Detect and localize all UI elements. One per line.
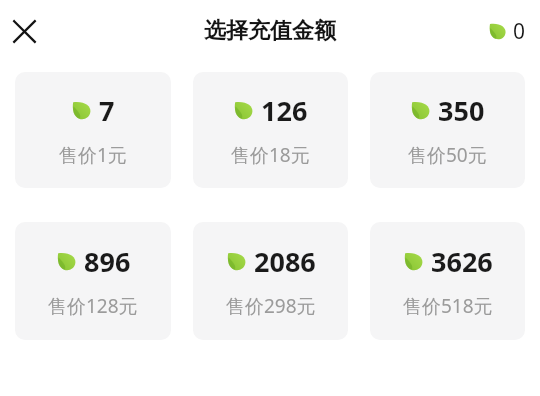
staticText: 选择充值金额 [204,17,336,45]
staticText: 售价128元 [48,293,138,319]
button[interactable]: 0 [488,17,526,46]
staticText: 0 [513,17,526,46]
button[interactable]: Close [2,9,46,53]
staticText: 售价18元 [231,142,310,168]
staticText: 2086 [254,243,316,280]
staticText: 售价298元 [226,293,316,319]
staticText: 7 [99,92,115,129]
button[interactable]: 7 [15,72,171,188]
staticText: 售价518元 [403,293,493,319]
staticText: 126 [261,92,308,129]
staticText: 3626 [431,243,493,280]
button[interactable]: 126 [193,72,348,188]
staticText: 售价50元 [408,142,487,168]
staticText: 896 [84,243,131,280]
staticText: 售价1元 [59,142,127,168]
button[interactable]: 350 [370,72,525,188]
button[interactable]: 2086 [193,222,348,340]
button[interactable]: 896 [15,222,171,340]
staticText: 350 [438,92,485,129]
button[interactable]: 3626 [370,222,525,340]
